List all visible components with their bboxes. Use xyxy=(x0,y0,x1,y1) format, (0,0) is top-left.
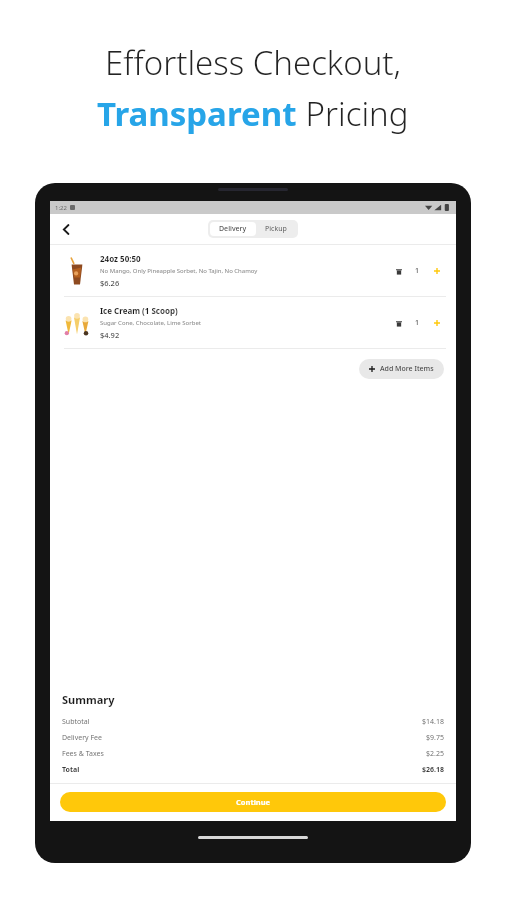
staticText: 1 xyxy=(415,318,420,328)
staticText: 1:22 xyxy=(55,204,67,212)
staticText: $26.18 xyxy=(422,765,444,775)
staticText: $9.75 xyxy=(426,733,444,743)
staticText: Total xyxy=(62,765,80,775)
button[interactable]: Delivery xyxy=(210,222,256,236)
button[interactable]: Pickup xyxy=(256,222,296,236)
staticText: Sugar Cone, Chocolate, Lime Sorbet xyxy=(100,319,201,327)
button[interactable]: Ice Cream (1 Scoop) xyxy=(50,297,456,348)
staticText: $14.18 xyxy=(422,717,444,727)
staticText: Ice Cream (1 Scoop) xyxy=(100,305,178,316)
staticText: Summary xyxy=(62,692,115,707)
button[interactable]: Remove item xyxy=(390,313,408,333)
staticText: Subtotal xyxy=(62,717,90,727)
staticText: Transparent xyxy=(97,91,297,136)
button[interactable]: Add More Items xyxy=(359,359,444,379)
staticText: Continue xyxy=(236,797,271,807)
staticText: $2.25 xyxy=(426,749,444,759)
staticText: 1 xyxy=(415,266,420,276)
staticText: Delivery xyxy=(219,224,247,234)
button[interactable]: Back xyxy=(56,219,76,239)
button[interactable]: 24oz 50:50 xyxy=(50,245,456,296)
button[interactable]: Add one xyxy=(427,313,446,333)
staticText: 24oz 50:50 xyxy=(100,253,141,264)
staticText: Pickup xyxy=(265,224,287,234)
staticText: $4.92 xyxy=(100,330,120,340)
button[interactable]: Add one xyxy=(427,261,446,281)
staticText: Add More Items xyxy=(380,364,434,374)
staticText: Delivery Fee xyxy=(62,733,102,743)
staticText: Pricing xyxy=(297,91,409,136)
staticText: No Mango, Only Pineapple Sorbet, No Taji… xyxy=(100,267,258,275)
button[interactable]: Continue xyxy=(60,792,446,812)
staticText: Fees & Taxes xyxy=(62,749,104,759)
button[interactable]: Remove item xyxy=(390,261,408,281)
staticText: $6.26 xyxy=(100,278,120,288)
staticText: Effortless Checkout, xyxy=(105,40,401,85)
